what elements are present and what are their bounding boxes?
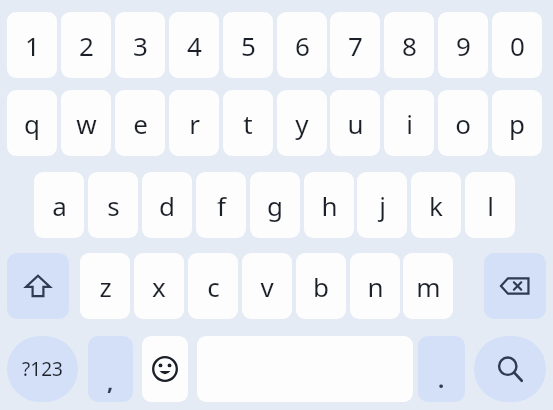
staticText: 9 (456, 28, 471, 63)
button[interactable]: c (188, 253, 238, 319)
button[interactable]: Emoji (142, 336, 188, 402)
button[interactable]: 9 (438, 12, 488, 78)
staticText: d (159, 188, 175, 223)
staticText: s (107, 188, 120, 223)
staticText: 5 (241, 28, 256, 63)
staticText: . (438, 364, 445, 394)
button[interactable]: b (296, 253, 346, 319)
staticText: g (267, 188, 283, 223)
button[interactable]: z (80, 253, 130, 319)
staticText: x (152, 269, 166, 304)
staticText: r (189, 106, 200, 141)
staticText: e (133, 106, 148, 141)
staticText: l (487, 188, 494, 223)
staticText: u (347, 106, 364, 141)
staticText: t (243, 106, 253, 141)
button[interactable]: a (34, 172, 84, 238)
button[interactable]: . (418, 336, 465, 402)
button[interactable]: , (88, 336, 133, 402)
button[interactable]: e (115, 90, 165, 156)
staticText: f (217, 188, 226, 223)
staticText: 1 (25, 28, 40, 63)
button[interactable]: 1 (7, 12, 57, 78)
staticText: 6 (295, 28, 310, 63)
staticText: 8 (402, 28, 417, 63)
button[interactable]: k (411, 172, 461, 238)
button[interactable]: r (169, 90, 219, 156)
button[interactable]: y (277, 90, 327, 156)
button[interactable]: 8 (384, 12, 434, 78)
button[interactable]: t (223, 90, 273, 156)
staticText: p (509, 106, 525, 141)
button[interactable]: n (350, 253, 400, 319)
button[interactable]: p (492, 90, 542, 156)
staticText: z (99, 269, 112, 304)
staticText: b (313, 269, 329, 304)
button[interactable]: Backspace (484, 253, 546, 319)
staticText: w (76, 106, 97, 141)
button[interactable]: g (250, 172, 300, 238)
staticText: 3 (133, 28, 148, 63)
button[interactable]: Search (474, 336, 546, 402)
button[interactable]: w (61, 90, 111, 156)
button[interactable]: i (384, 90, 434, 156)
staticText: , (107, 366, 114, 396)
staticText: 7 (348, 28, 363, 63)
button[interactable]: 5 (223, 12, 273, 78)
staticText: i (406, 106, 413, 141)
button[interactable]: m (403, 253, 453, 319)
button[interactable]: ?123 (7, 336, 78, 402)
button[interactable]: 0 (492, 12, 542, 78)
staticText: 0 (510, 28, 525, 63)
button[interactable]: s (88, 172, 138, 238)
staticText: 2 (79, 28, 94, 63)
staticText: ?123 (22, 356, 63, 382)
button[interactable]: v (242, 253, 292, 319)
staticText: q (24, 106, 40, 141)
button[interactable]: 6 (277, 12, 327, 78)
button[interactable]: o (438, 90, 488, 156)
staticText: a (52, 188, 67, 223)
staticText: o (455, 106, 471, 141)
staticText: v (260, 269, 274, 304)
button[interactable]: u (330, 90, 380, 156)
staticText: n (367, 269, 384, 304)
button[interactable]: q (7, 90, 57, 156)
button[interactable]: 2 (61, 12, 111, 78)
button[interactable]: x (134, 253, 184, 319)
button[interactable]: Shift (7, 253, 69, 319)
staticText: 4 (187, 28, 202, 63)
staticText: y (295, 106, 309, 141)
button[interactable]: h (304, 172, 354, 238)
staticText: m (416, 269, 441, 304)
button[interactable]: 3 (115, 12, 165, 78)
button[interactable]: l (465, 172, 515, 238)
button[interactable]: j (357, 172, 407, 238)
staticText: k (429, 188, 443, 223)
button[interactable]: 7 (330, 12, 380, 78)
button[interactable]: f (196, 172, 246, 238)
button[interactable]: 4 (169, 12, 219, 78)
staticText: h (321, 188, 338, 223)
staticText: j (379, 188, 386, 223)
button[interactable]: d (142, 172, 192, 238)
staticText: c (207, 269, 220, 304)
